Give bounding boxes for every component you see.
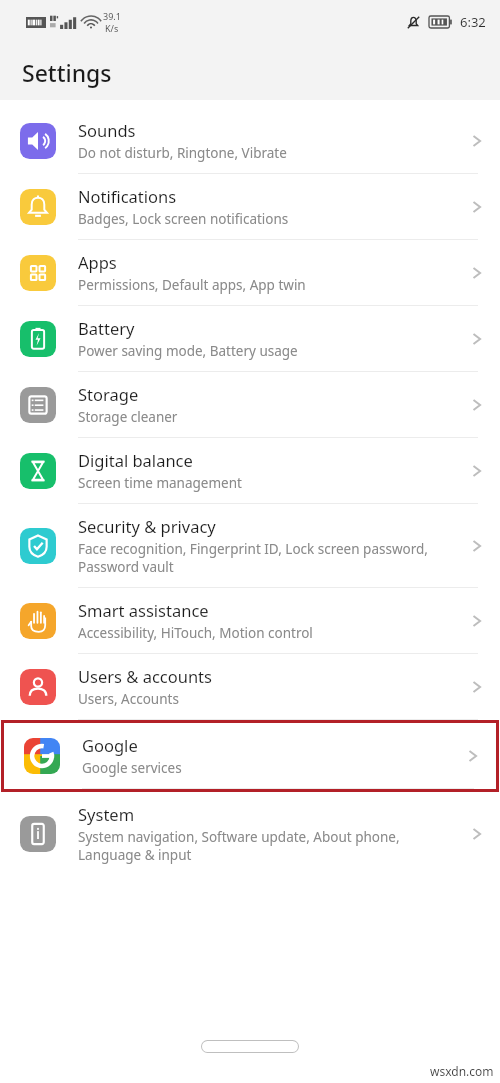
staticText: Apps (78, 251, 117, 273)
staticText: Security & privacy (78, 515, 216, 537)
staticText: Face recognition, Fingerprint ID, Lock s… (78, 540, 462, 576)
staticText: Users, Accounts (78, 690, 179, 708)
staticText: Permissions, Default apps, App twin (78, 276, 306, 294)
staticText: System (78, 803, 135, 825)
staticText: 6:32 (460, 13, 486, 31)
staticText: K/s (105, 22, 119, 34)
button[interactable]: Sounds (0, 108, 500, 173)
staticText: Screen time management (78, 474, 242, 492)
staticText: Do not disturb, Ringtone, Vibrate (78, 144, 287, 162)
staticText: Storage (78, 383, 139, 405)
button[interactable]: Users & accounts (0, 654, 500, 719)
button[interactable]: System (0, 792, 500, 875)
button[interactable]: Google (4, 723, 496, 788)
staticText: Google services (82, 759, 182, 777)
button[interactable]: Digital balance (0, 438, 500, 503)
button[interactable]: Security & privacy (0, 504, 500, 587)
staticText: Badges, Lock screen notifications (78, 210, 289, 228)
button[interactable]: Apps (0, 240, 500, 305)
button[interactable]: Smart assistance (0, 588, 500, 653)
staticText: Storage cleaner (78, 408, 178, 426)
button[interactable]: Storage (0, 372, 500, 437)
staticText: Accessibility, HiTouch, Motion control (78, 624, 313, 642)
staticText: Settings (22, 57, 112, 88)
staticText: wsxdn.com (430, 1063, 494, 1079)
button[interactable]: Battery (0, 306, 500, 371)
button[interactable]: Notifications (0, 174, 500, 239)
staticText: Power saving mode, Battery usage (78, 342, 298, 360)
staticText: Sounds (78, 119, 136, 141)
staticText: Battery (78, 317, 135, 339)
staticText: Digital balance (78, 449, 193, 471)
staticText: Users & accounts (78, 665, 212, 687)
staticText: Notifications (78, 185, 177, 207)
staticText: 39.1 (103, 10, 121, 22)
staticText: Google (82, 734, 138, 756)
staticText: Smart assistance (78, 599, 209, 621)
staticText: System navigation, Software update, Abou… (78, 828, 462, 864)
